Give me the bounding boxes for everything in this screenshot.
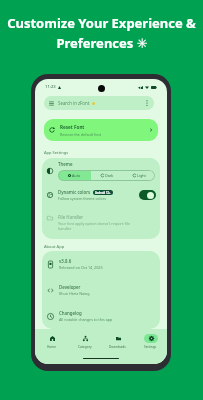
staticText: Category (78, 345, 92, 349)
staticText: App Settings (44, 150, 69, 155)
staticText: Android 12+ (95, 191, 111, 195)
staticText: Search in zFont (58, 100, 90, 106)
staticText: Preferences ✳️ (56, 34, 148, 52)
staticText: Customize Your Experience & (7, 14, 196, 32)
staticText: Khun Htetz Naing (59, 291, 90, 296)
staticText: v3.8.6 (59, 258, 72, 264)
staticText: Your font apply option doesn't require f… (58, 221, 134, 231)
staticText: Changelog (59, 310, 82, 316)
button[interactable]: Search in zFont (44, 96, 154, 110)
button[interactable]: Settings (134, 329, 167, 354)
staticText: All notable changes to this app (59, 317, 113, 322)
staticText: Follow system theme colors (58, 196, 106, 201)
button[interactable]: Reset Font (44, 119, 158, 141)
staticText: About App (44, 244, 65, 249)
staticText: Restore the default font (60, 132, 102, 137)
button[interactable]: Dynamic colors (42, 188, 160, 202)
button[interactable]: Developer (42, 277, 160, 303)
button[interactable]: Downloads (101, 329, 134, 354)
staticText: File Handler (58, 214, 84, 220)
staticText: Theme (58, 161, 73, 167)
button[interactable]: Dark (91, 170, 123, 181)
staticText: 11:23 (45, 84, 56, 90)
button[interactable]: Home (35, 329, 68, 354)
staticText: Dark (105, 173, 114, 178)
staticText: Light (137, 173, 146, 178)
staticText: Released on Oct 14, 2025 (59, 265, 103, 270)
button[interactable]: Auto (58, 170, 91, 181)
staticText: Reset Font (60, 124, 85, 130)
staticText: Dynamic colors (58, 189, 91, 195)
staticText: Home (47, 345, 57, 349)
staticText: Developer (59, 284, 81, 290)
button[interactable]: Changelog (42, 303, 160, 329)
button[interactable]: More options (142, 96, 151, 110)
button[interactable]: Light (123, 170, 155, 181)
button[interactable]: Category (68, 329, 101, 354)
staticText: Settings (144, 345, 157, 349)
staticText: Auto (72, 173, 81, 178)
staticText: Downloads (109, 345, 126, 349)
button[interactable]: v3.8.6 (42, 251, 160, 277)
